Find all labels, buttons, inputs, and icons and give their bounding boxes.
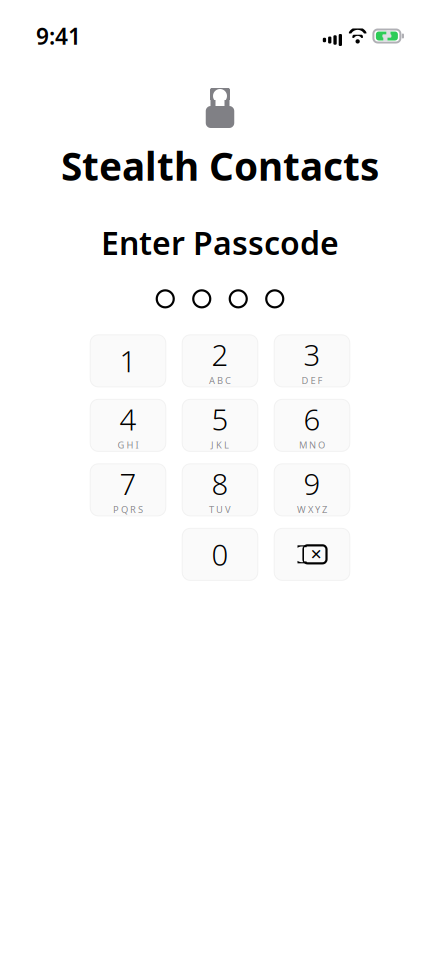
staticText: A B C [209, 374, 231, 386]
button[interactable]: 0 [182, 528, 258, 580]
button[interactable]: 9 [274, 464, 350, 516]
staticText: 4 [119, 400, 136, 439]
staticText: 3 [303, 335, 320, 374]
button[interactable]: 8 [182, 464, 258, 516]
staticText: M N O [299, 439, 325, 451]
staticText: 1 [119, 341, 136, 380]
button[interactable]: 5 [182, 399, 258, 451]
staticText: D E F [301, 374, 322, 386]
staticText: 8 [211, 464, 228, 503]
button[interactable]: Delete [274, 528, 350, 580]
staticText: W X Y Z [297, 503, 327, 515]
button[interactable]: 1 [90, 335, 166, 387]
staticText: 0 [211, 535, 228, 574]
staticText: 2 [211, 335, 228, 374]
button[interactable]: 3 [274, 335, 350, 387]
staticText: 9:41 [36, 21, 81, 51]
staticText: Stealth Contacts [61, 140, 379, 191]
staticText: G H I [117, 439, 138, 451]
button[interactable]: 2 [182, 335, 258, 387]
staticText: 5 [211, 400, 228, 439]
staticText: 9 [303, 464, 320, 503]
button[interactable]: 4 [90, 399, 166, 451]
staticText: P Q R S [113, 503, 143, 515]
staticText: 7 [119, 464, 136, 503]
staticText: T U V [209, 503, 231, 515]
button[interactable]: 7 [90, 464, 166, 516]
staticText: 6 [303, 400, 320, 439]
button[interactable]: 6 [274, 399, 350, 451]
staticText: Enter Passcode [101, 221, 339, 264]
staticText: J K L [211, 439, 229, 451]
staticText: ✕ [310, 546, 322, 563]
